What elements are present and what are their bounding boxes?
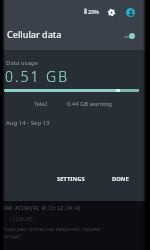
staticText: Коды уже прописаны вверхнем, покажи <box>3 226 101 233</box>
staticText: 0.51 GB <box>5 67 70 86</box>
button[interactable]: DONE <box>107 170 134 188</box>
staticText: Cellular data <box>7 28 62 40</box>
staticText: Aug 14 - Sep 13 <box>6 119 50 127</box>
button[interactable]: Account <box>126 8 135 17</box>
staticText: выход? <box>3 233 21 240</box>
button[interactable]: Settings <box>106 7 116 17</box>
staticText: 20% <box>88 8 99 15</box>
staticText: Data usage <box>6 59 38 67</box>
staticText: Tele2 <box>34 100 48 107</box>
staticText: > (1198)05 <box>3 216 34 223</box>
button[interactable]: Cellular data <box>0 24 150 46</box>
staticText: 998 #1198(91 0:13:12:24:4) <box>3 205 82 212</box>
staticText: 0.44 GB warning <box>67 100 112 108</box>
staticText: SETTINGS <box>57 175 85 183</box>
staticText: DONE <box>112 175 129 183</box>
button[interactable]: SETTINGS <box>52 170 90 188</box>
